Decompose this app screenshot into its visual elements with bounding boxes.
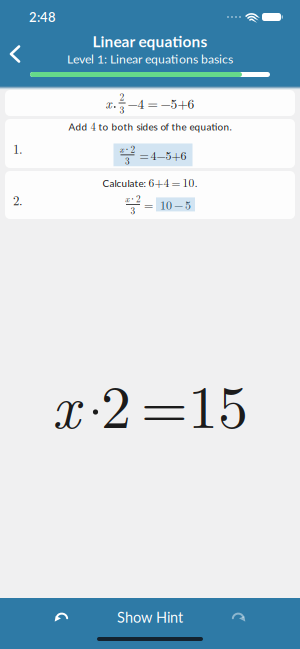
staticText: x (52, 360, 80, 445)
staticText: 3 (120, 103, 125, 116)
staticText: 2 =15 (101, 360, 248, 445)
staticText: 3 (125, 154, 130, 167)
staticText: 2:48 (29, 9, 56, 25)
staticText: 3 (130, 204, 135, 217)
staticText: Show Hint (117, 608, 183, 626)
staticText: x ⋅ 2 (119, 143, 135, 155)
staticText: 2 (120, 90, 125, 103)
staticText: x (105, 93, 111, 113)
staticText: 10 − 5 (160, 196, 191, 213)
button[interactable]: Back (0, 42, 19, 65)
staticText: Calculate: 6+4 = 10. (102, 174, 197, 190)
staticText: Add 4 to both sides of the equation. (68, 119, 231, 133)
button[interactable]: Show Hint (93, 600, 207, 634)
staticText: Level 1: Linear equations basics (67, 51, 233, 66)
staticText: = 4−5+6 (139, 146, 186, 163)
staticText: Linear equations (92, 32, 207, 50)
button[interactable]: Undo (0, 612, 68, 622)
staticText: 1. (13, 139, 23, 157)
staticText: −4 = −5+6 (128, 93, 195, 113)
button[interactable]: Redo (232, 612, 300, 622)
staticText: = (144, 196, 153, 213)
staticText: 2. (13, 191, 23, 209)
staticText: x ⋅ 2 (125, 192, 141, 205)
